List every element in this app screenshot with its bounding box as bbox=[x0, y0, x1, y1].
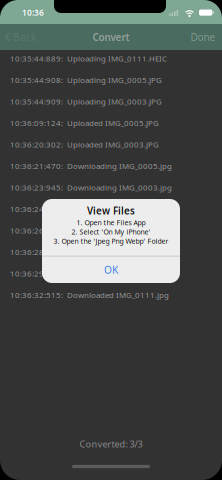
staticText: 1. Open the Files App bbox=[76, 218, 145, 227]
staticText: 10:35:44:889: Uploading IMG_0111.HEIC bbox=[10, 53, 167, 64]
staticText: View Files bbox=[87, 204, 135, 217]
staticText: 10:36:26:161: Downloaded IMG_0005.jpg bbox=[10, 225, 169, 236]
staticText: 10:36 bbox=[22, 7, 44, 18]
staticText: Done bbox=[190, 30, 215, 44]
staticText: 10:36:29:804: Downloading IMG_0111.jpg bbox=[10, 268, 172, 279]
staticText: Back bbox=[13, 30, 36, 44]
staticText: 10:36:24:558: Downloading IMG_0111.jpg bbox=[10, 204, 172, 214]
button[interactable]: Back bbox=[0, 30, 36, 44]
staticText: 10:35:44:908: Uploading IMG_0005.JPG bbox=[10, 75, 162, 85]
staticText: 2. Select 'On My iPhone' bbox=[71, 227, 150, 236]
staticText: OK bbox=[104, 263, 118, 277]
staticText: 10:35:44:909: Uploading IMG_0003.JPG bbox=[10, 96, 162, 107]
staticText: 10:36:21:470: Downloading IMG_0005.jpg bbox=[10, 161, 172, 171]
staticText: Converted: 3/3 bbox=[79, 438, 142, 450]
staticText: 10:36:20:302: Uploaded IMG_0003.JPG bbox=[10, 139, 159, 150]
staticText: Convert bbox=[92, 30, 129, 44]
button[interactable]: Done bbox=[190, 30, 222, 44]
staticText: 10:36:28:013: Downloaded IMG_0003.jpg bbox=[10, 247, 169, 257]
staticText: 10:36:32:515: Downloaded IMG_0111.jpg bbox=[10, 290, 169, 300]
staticText: 10:36:23:945: Downloading IMG_0003.jpg bbox=[10, 182, 172, 193]
button[interactable]: OK bbox=[42, 256, 180, 283]
staticText: 3. Open the 'Jpeg Png Webp' Folder bbox=[53, 236, 168, 246]
staticText: 10:36:09:124: Uploaded IMG_0005.JPG bbox=[10, 118, 159, 128]
